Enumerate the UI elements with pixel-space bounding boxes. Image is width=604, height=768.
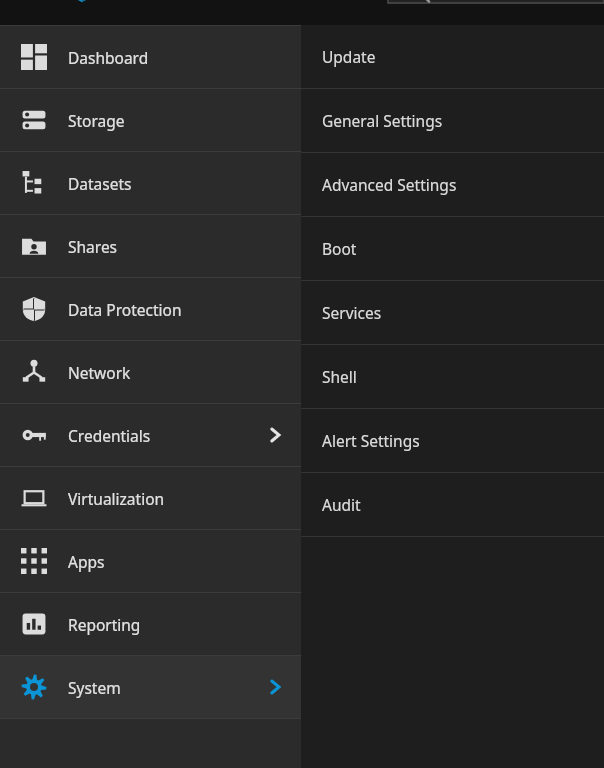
staticText: System: [68, 677, 249, 698]
button[interactable]: Services: [301, 281, 604, 344]
staticText: Data Protection: [68, 299, 301, 320]
staticText: Shell: [322, 366, 604, 387]
staticText: Alert Settings: [322, 430, 604, 451]
button[interactable]: Data Protection: [0, 278, 301, 340]
staticText: Advanced Settings: [322, 174, 604, 195]
staticText: Dashboard: [68, 47, 301, 68]
staticText: Audit: [322, 494, 604, 515]
staticText: Storage: [68, 110, 301, 131]
button[interactable]: Datasets: [0, 152, 301, 214]
button[interactable]: Boot: [301, 217, 604, 280]
staticText: Datasets: [68, 173, 301, 194]
staticText: Services: [322, 302, 604, 323]
button[interactable]: Dashboard: [0, 26, 301, 88]
staticText: Network: [68, 362, 301, 383]
button[interactable]: System: [0, 656, 301, 718]
button[interactable]: Shell: [301, 345, 604, 408]
staticText: Apps: [68, 551, 301, 572]
button[interactable]: Shares: [0, 215, 301, 277]
button[interactable]: Audit: [301, 473, 604, 536]
button[interactable]: Credentials: [0, 404, 301, 466]
button[interactable]: Reporting: [0, 593, 301, 655]
staticText: General Settings: [322, 110, 604, 131]
button[interactable]: Update: [301, 25, 604, 88]
staticText: Boot: [322, 238, 604, 259]
button[interactable]: Network: [0, 341, 301, 403]
staticText: Update: [322, 46, 604, 67]
button[interactable]: Search: [388, 0, 604, 3]
button[interactable]: Advanced Settings: [301, 153, 604, 216]
button[interactable]: Alert Settings: [301, 409, 604, 472]
button[interactable]: Apps: [0, 530, 301, 592]
button[interactable]: General Settings: [301, 89, 604, 152]
staticText: Shares: [68, 236, 301, 257]
button[interactable]: Virtualization: [0, 467, 301, 529]
staticText: Credentials: [68, 425, 249, 446]
staticText: Reporting: [68, 614, 301, 635]
button[interactable]: Storage: [0, 89, 301, 151]
staticText: Virtualization: [68, 488, 301, 509]
